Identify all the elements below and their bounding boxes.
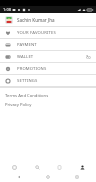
button[interactable]: Sachin Kumar Jha (0, 14, 96, 26)
staticText: 1:08 (3, 7, 11, 12)
button[interactable]: Privacy Policy (0, 100, 96, 109)
staticText: YOUR FAVOURITES (17, 30, 56, 36)
staticText: PAYMENT (17, 42, 37, 48)
staticText: SETTINGS (17, 78, 38, 84)
button[interactable]: Home (38, 172, 58, 182)
button[interactable]: Account (73, 162, 91, 172)
button[interactable]: WALLET (0, 51, 96, 63)
staticText: Sachin Kumar Jha (17, 17, 55, 23)
button[interactable]: Terms And Conditions (0, 91, 96, 100)
button[interactable]: Recents (67, 172, 87, 182)
button[interactable]: Home (5, 162, 23, 172)
button[interactable]: PAYMENT (0, 39, 96, 51)
button[interactable]: Back (9, 172, 29, 182)
staticText: WALLET (17, 54, 34, 60)
staticText: Terms And Conditions (5, 93, 49, 99)
button[interactable]: Orders (50, 162, 68, 172)
button[interactable]: SETTINGS (0, 75, 96, 87)
button[interactable]: YOUR FAVOURITES (0, 27, 96, 39)
button[interactable]: Search (28, 162, 46, 172)
button[interactable]: PROMOTIONS (0, 63, 96, 75)
staticText: PROMOTIONS (17, 66, 47, 72)
staticText: Privacy Policy (5, 102, 32, 108)
staticText: ₹0 (86, 55, 91, 60)
